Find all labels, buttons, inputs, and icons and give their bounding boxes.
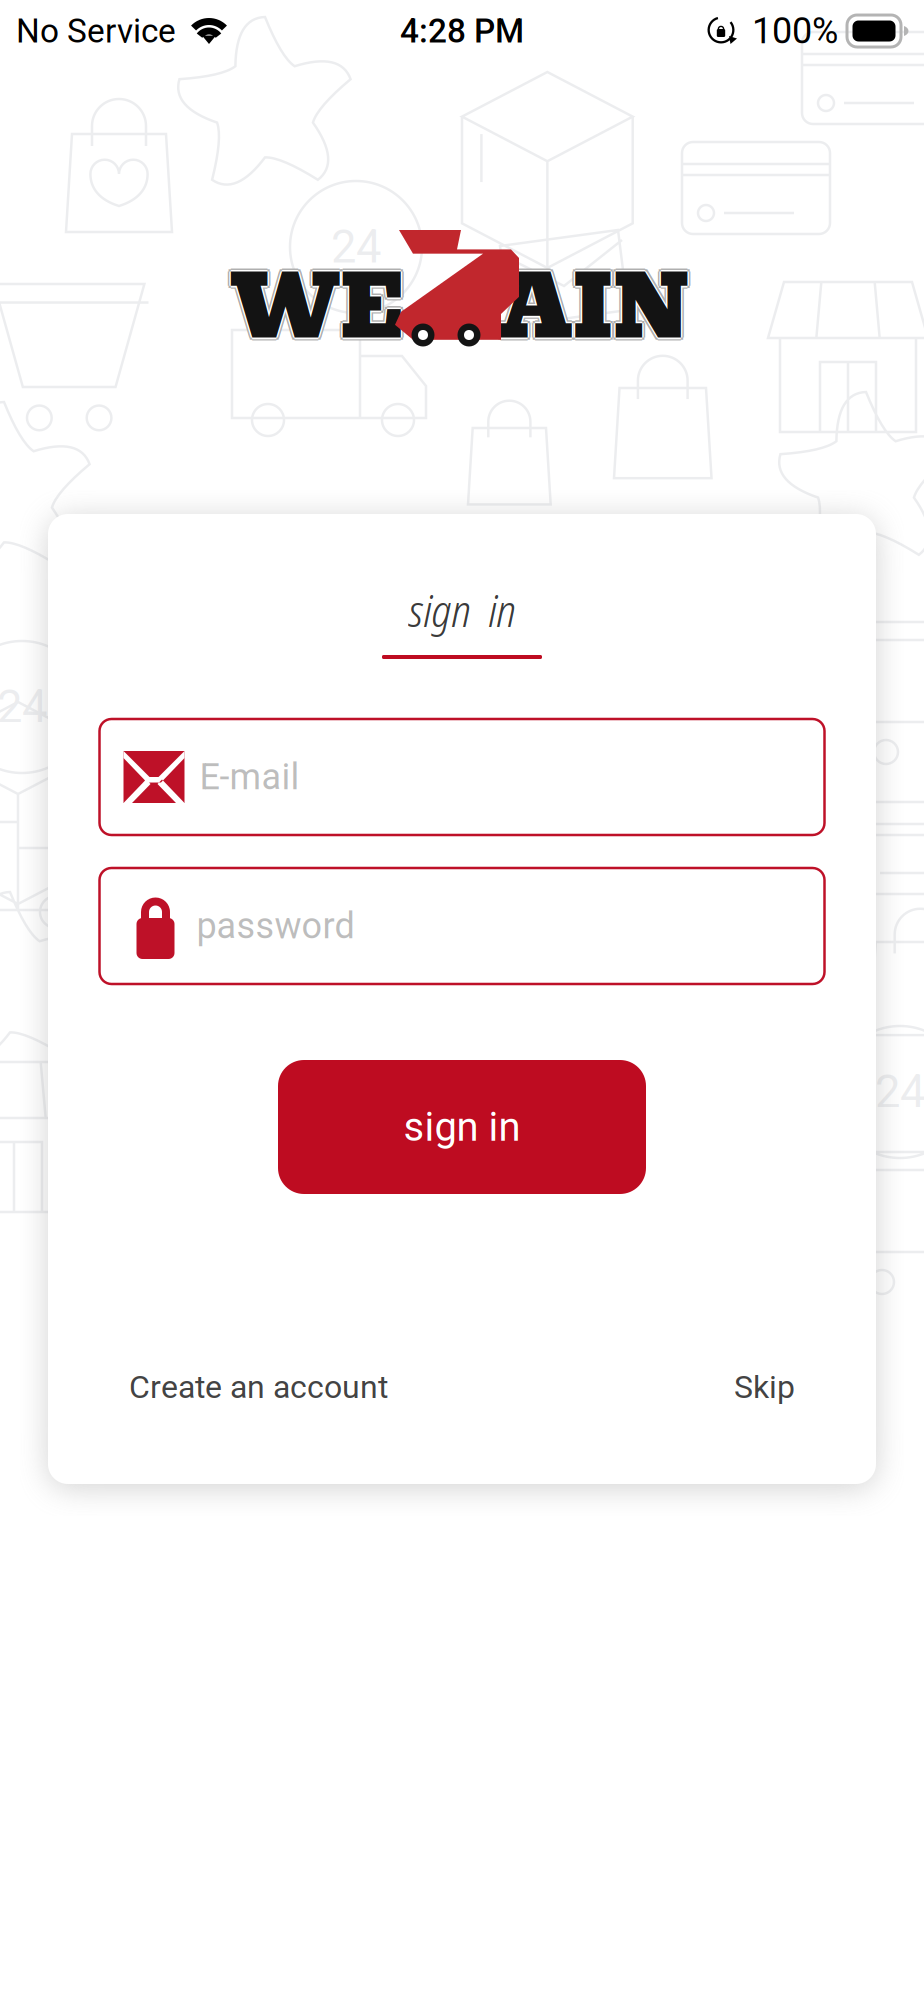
staticText: Create an account [129, 1368, 388, 1406]
staticText: WE [230, 237, 406, 372]
staticText: 24 [0, 680, 47, 733]
staticText: WE [230, 243, 406, 378]
staticText: WE [230, 239, 406, 374]
staticText: AIN [498, 243, 688, 378]
staticText: sign in [408, 580, 515, 640]
staticText: AIN [500, 243, 690, 378]
staticText: AIN [503, 240, 693, 375]
staticText: WE [228, 243, 404, 378]
staticText: 24 [875, 1065, 924, 1118]
staticText: Skip [734, 1368, 795, 1406]
staticText: password [196, 905, 354, 947]
staticText: AIN [502, 240, 692, 375]
staticText: AIN [500, 240, 690, 375]
button[interactable]: sign in [278, 1060, 646, 1194]
button[interactable]: Skip [734, 1368, 795, 1406]
staticText: AIN [500, 237, 690, 372]
staticText: WE [233, 240, 409, 375]
staticText: WE [232, 243, 408, 378]
staticText: AIN [500, 242, 690, 377]
staticText: 24 [331, 220, 381, 273]
staticText: WE [228, 240, 404, 375]
staticText: AIN [497, 240, 687, 375]
staticText: WE [228, 238, 404, 373]
button[interactable]: Create an account [129, 1368, 388, 1406]
staticText: AIN [498, 238, 688, 373]
staticText: AIN [502, 243, 692, 378]
staticText: WE [230, 242, 406, 377]
staticText: AIN [502, 238, 692, 373]
staticText: WE [232, 238, 408, 373]
staticText: AIN [498, 240, 688, 375]
staticText: WE [232, 240, 408, 375]
staticText: No Service [16, 11, 176, 51]
staticText: 100% [752, 10, 838, 52]
staticText: AIN [500, 239, 690, 374]
staticText: WE [230, 240, 406, 375]
staticText: WE [227, 240, 403, 375]
staticText: 4:28 PM [400, 11, 524, 51]
staticText: E-mail [199, 756, 299, 798]
staticText: sign in [403, 1104, 520, 1150]
